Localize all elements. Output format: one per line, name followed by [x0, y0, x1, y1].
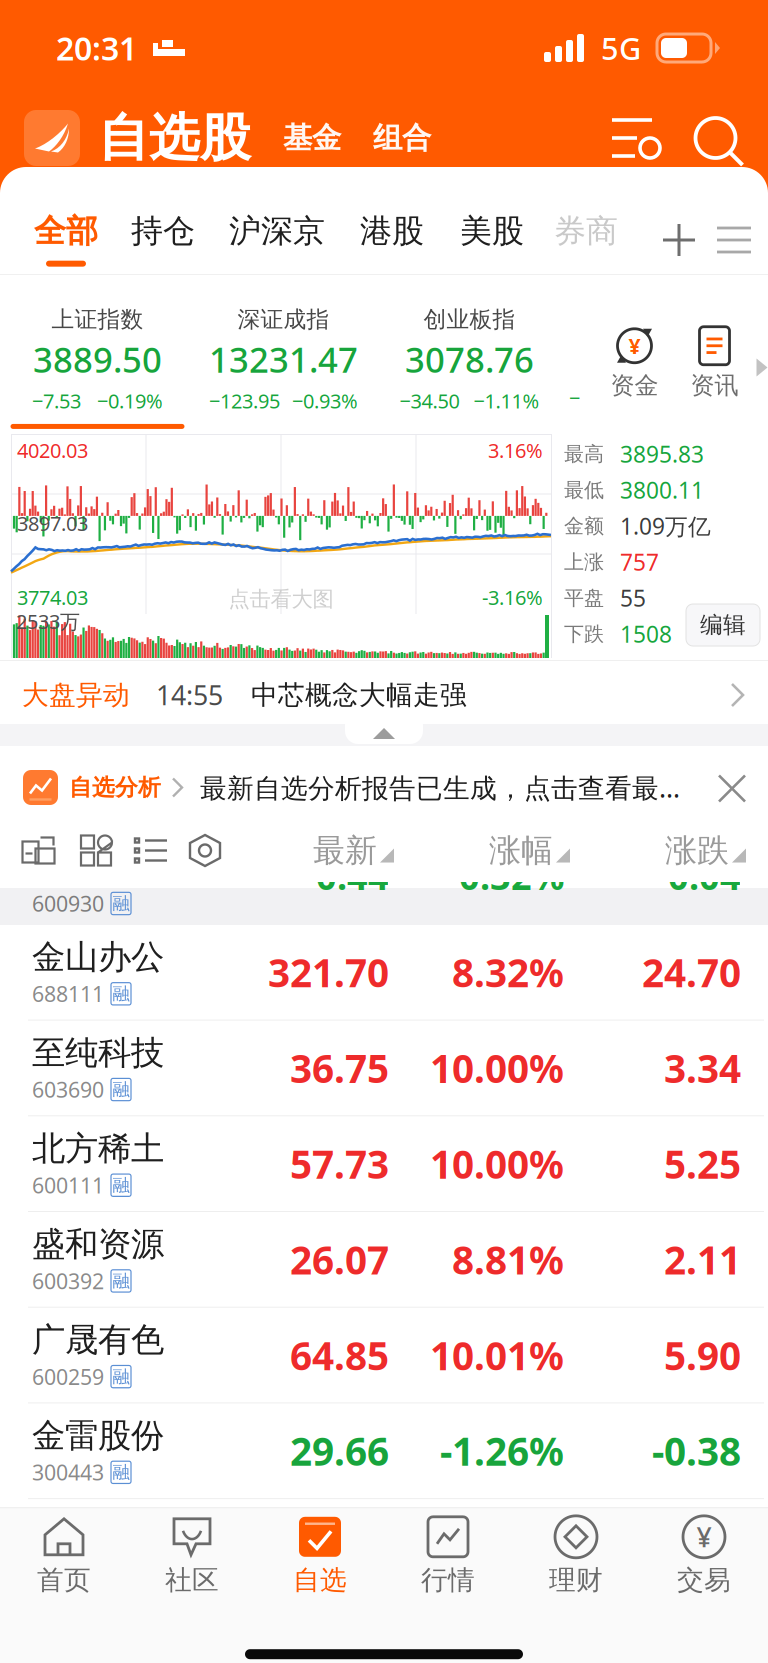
- button[interactable]: 分组管理: [706, 206, 762, 274]
- staticText: 2533万: [16, 608, 80, 635]
- button[interactable]: 港股: [342, 206, 442, 274]
- staticText: 55: [620, 583, 646, 613]
- button[interactable]: 金雷股份: [0, 1403, 768, 1499]
- staticText: 创业板指: [423, 305, 515, 333]
- staticText: 4020.03: [17, 437, 88, 464]
- staticText: 14:55: [156, 677, 223, 713]
- button[interactable]: 编辑: [686, 604, 760, 646]
- staticText: 金山办公: [32, 937, 164, 978]
- staticText: 3078.76: [405, 336, 534, 382]
- staticText: 融: [112, 1270, 129, 1292]
- staticText: 最新: [313, 831, 377, 870]
- button[interactable]: 北方稀土: [0, 1116, 768, 1212]
- button[interactable]: 宫格视图: [70, 819, 124, 882]
- button[interactable]: 资讯: [674, 303, 754, 405]
- button[interactable]: 关闭: [706, 762, 756, 812]
- staticText: 600259: [32, 1362, 104, 1391]
- staticText: 融: [112, 983, 129, 1004]
- staticText: 自选分析: [69, 774, 161, 801]
- staticText: 涨幅: [489, 831, 553, 870]
- staticText: 美股: [460, 211, 524, 251]
- staticText: 1.09万亿: [620, 511, 711, 541]
- staticText: 融: [112, 1175, 129, 1196]
- button[interactable]: 全部: [18, 206, 114, 274]
- staticText: 持仓: [131, 211, 195, 251]
- staticText: 行情: [421, 1564, 475, 1597]
- button[interactable]: 持仓: [114, 206, 212, 274]
- staticText: 26.07: [290, 1234, 389, 1285]
- button[interactable]: 深证成指: [190, 276, 376, 432]
- staticText: 上涨: [564, 550, 604, 574]
- staticText: 点击看大图: [228, 586, 333, 612]
- staticText: 3800.11: [620, 475, 704, 505]
- staticText: 最低: [564, 478, 604, 502]
- staticText: ¥: [628, 332, 640, 360]
- button[interactable]: 自定义: [178, 819, 232, 882]
- button[interactable]: 大盘异动: [0, 661, 768, 729]
- staticText: 深证成指: [237, 305, 329, 333]
- button[interactable]: 券商: [542, 206, 630, 274]
- button[interactable]: 首页: [0, 1510, 128, 1602]
- staticText: −1.11%: [473, 387, 539, 414]
- button[interactable]: 沪深京: [212, 206, 342, 274]
- staticText: 融: [112, 1462, 129, 1483]
- button[interactable]: 组合: [357, 105, 447, 171]
- staticText: 3895.83: [620, 439, 704, 469]
- staticText: 0.04: [668, 852, 741, 900]
- staticText: 理财: [549, 1564, 603, 1597]
- button[interactable]: 切换视图: [8, 819, 70, 882]
- button[interactable]: 基金: [251, 105, 357, 171]
- button[interactable]: 创业板指: [376, 276, 562, 432]
- staticText: 5.25: [664, 1138, 741, 1189]
- button[interactable]: 盛和资源: [0, 1212, 768, 1308]
- button[interactable]: 上证指数: [4, 276, 190, 432]
- staticText: 29.66: [290, 1425, 389, 1476]
- staticText: 中芯概念大幅走强: [251, 679, 467, 711]
- staticText: 3897.03: [17, 510, 88, 537]
- staticText: 20:31: [56, 27, 137, 69]
- button[interactable]: 搜索: [685, 113, 746, 162]
- button[interactable]: 自选: [256, 1510, 384, 1602]
- staticText: 平盘: [564, 586, 604, 610]
- staticText: −: [569, 384, 580, 411]
- button[interactable]: ¥: [594, 303, 674, 405]
- staticText: 688111: [32, 980, 104, 1008]
- button[interactable]: 最新: [270, 819, 394, 882]
- staticText: 300443: [32, 1458, 104, 1486]
- staticText: 金额: [564, 514, 604, 538]
- staticText: 北方稀土: [32, 1128, 164, 1169]
- button[interactable]: 涨跌: [570, 819, 746, 882]
- staticText: −0.93%: [292, 387, 358, 414]
- staticText: 36.75: [290, 1042, 389, 1094]
- button[interactable]: 理财: [512, 1510, 640, 1602]
- staticText: -3.16%: [482, 584, 543, 611]
- staticText: 大盘异动: [22, 679, 130, 711]
- button[interactable]: 金山办公: [0, 925, 768, 1021]
- button[interactable]: 广晟有色: [0, 1308, 768, 1403]
- button[interactable]: 至纯科技: [0, 1021, 768, 1116]
- button[interactable]: 社区: [128, 1510, 256, 1602]
- staticText: 10.01%: [430, 1329, 564, 1381]
- button[interactable]: ¥: [640, 1510, 768, 1602]
- staticText: 资讯: [690, 371, 738, 400]
- staticText: 交易: [677, 1564, 731, 1597]
- button[interactable]: 添加分组: [652, 206, 706, 274]
- staticText: −34.50: [399, 387, 459, 414]
- staticText: 600392: [32, 1267, 104, 1295]
- staticText: −123.95: [209, 387, 280, 414]
- button[interactable]: 美股: [442, 206, 542, 274]
- staticText: 0.44: [316, 852, 389, 900]
- button[interactable]: 列表视图: [124, 819, 178, 882]
- staticText: 757: [620, 547, 659, 577]
- button[interactable]: 自选设置: [597, 115, 667, 161]
- button[interactable]: 涨幅: [394, 819, 570, 882]
- staticText: 融: [112, 1079, 129, 1100]
- staticText: 融: [112, 1366, 129, 1387]
- button[interactable]: 行情: [384, 1510, 512, 1602]
- staticText: 券商: [554, 211, 618, 251]
- staticText: 社区: [165, 1564, 219, 1597]
- staticText: 8.32%: [452, 947, 564, 998]
- staticText: 下跌: [564, 622, 604, 646]
- staticText: 10.00%: [430, 1138, 564, 1189]
- staticText: −7.53: [32, 387, 81, 414]
